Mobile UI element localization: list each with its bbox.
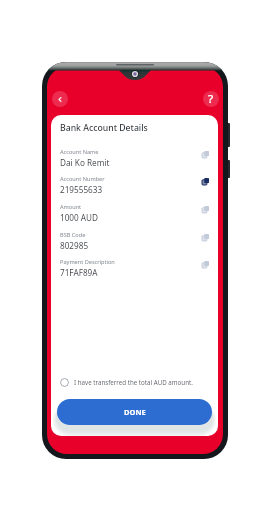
- staticText: 71FAF89A: [60, 267, 98, 278]
- staticText: Account Number: [60, 175, 105, 183]
- button[interactable]: Copy Amount: [60, 203, 209, 225]
- staticText: 802985: [60, 240, 89, 251]
- button[interactable]: Copy BSB Code: [60, 231, 209, 253]
- button[interactable]: Copy Payment Description: [60, 258, 209, 280]
- staticText: Payment Description: [60, 258, 115, 266]
- staticText: DONE: [124, 407, 146, 417]
- staticText: Dai Ko Remit: [60, 157, 110, 168]
- button[interactable]: DONE: [57, 399, 212, 425]
- staticText: I have transferred the total AUD amount.: [74, 378, 193, 386]
- button[interactable]: Help: [203, 91, 219, 107]
- staticText: Bank Account Details: [60, 122, 148, 134]
- staticText: 219555633: [60, 184, 103, 195]
- button[interactable]: Back: [52, 91, 68, 107]
- staticText: 1000 AUD: [60, 212, 99, 223]
- button[interactable]: Copy Account Name: [60, 148, 209, 170]
- staticText: Amount: [60, 203, 82, 211]
- staticText: ?: [208, 91, 214, 107]
- button[interactable]: I have transferred the total AUD amount.: [60, 375, 193, 389]
- staticText: BSB Code: [60, 231, 86, 239]
- staticText: Account Name: [60, 148, 99, 156]
- button[interactable]: Copy Account Number: [60, 175, 209, 197]
